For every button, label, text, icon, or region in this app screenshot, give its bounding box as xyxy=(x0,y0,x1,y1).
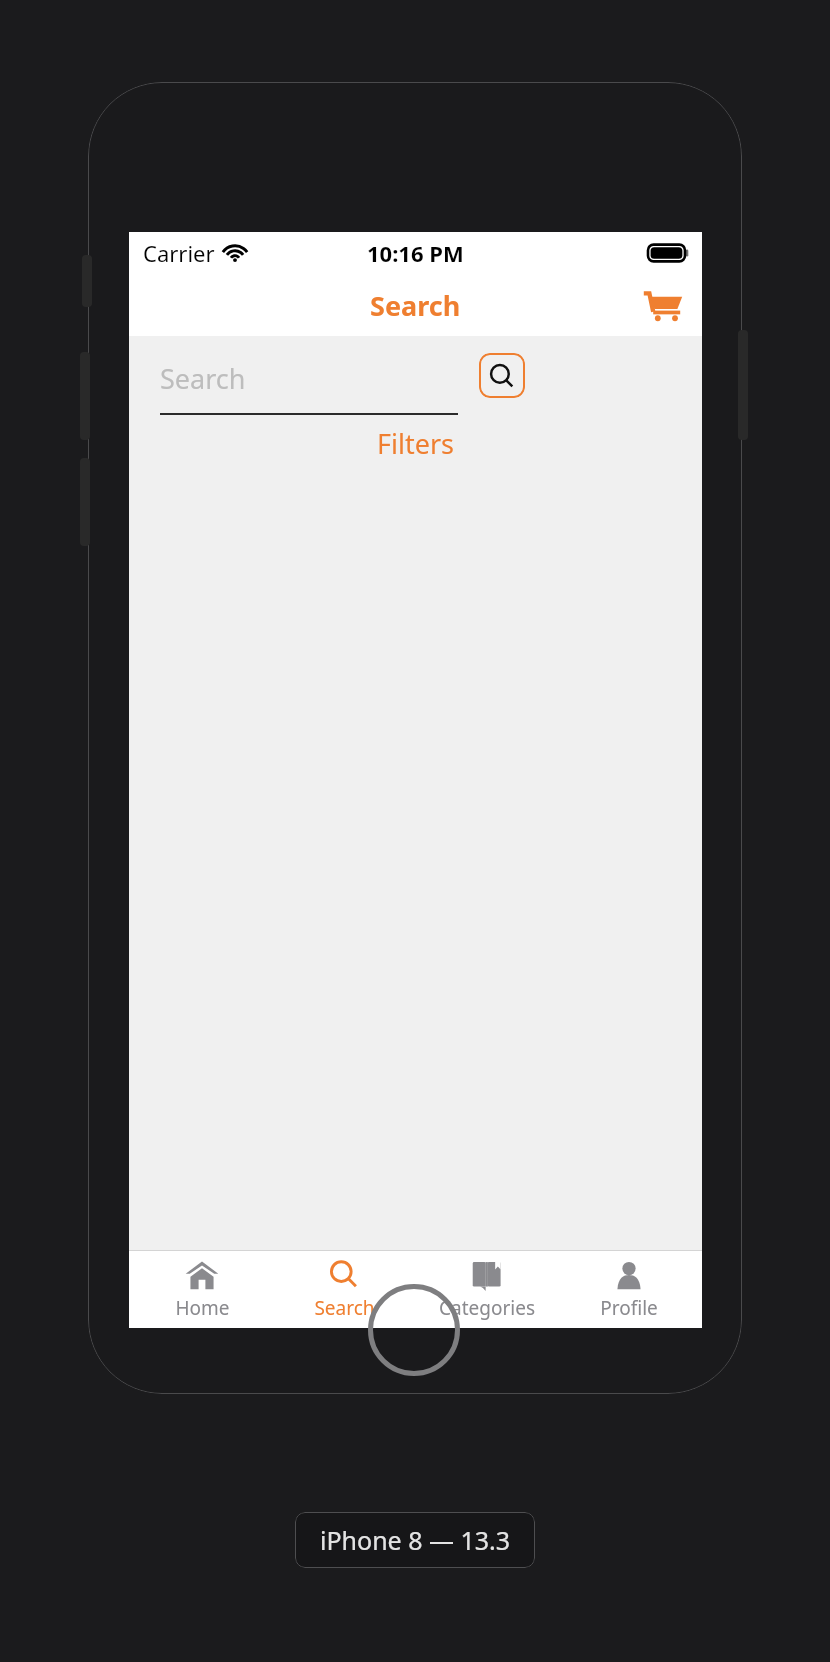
staticText: 10:16 PM xyxy=(367,238,464,268)
staticText: Home xyxy=(175,1295,230,1321)
other: Home button xyxy=(368,1284,460,1376)
button[interactable]: Home xyxy=(132,1251,272,1328)
staticText: Search xyxy=(314,1295,375,1321)
staticText: iPhone 8 — 13.3 xyxy=(320,1523,511,1557)
staticText: Carrier xyxy=(143,238,215,268)
staticText: Search xyxy=(160,360,246,397)
staticText: Categories xyxy=(439,1295,535,1321)
button[interactable]: Search xyxy=(274,1251,414,1328)
button[interactable]: Categories xyxy=(417,1251,557,1328)
button[interactable]: Profile xyxy=(559,1251,699,1328)
button[interactable]: Filters xyxy=(367,422,465,465)
button[interactable]: Cart xyxy=(638,280,688,330)
staticText: Profile xyxy=(600,1295,658,1321)
button[interactable]: Search xyxy=(479,353,525,398)
button[interactable]: Search xyxy=(160,360,458,415)
staticText: Search xyxy=(370,287,461,324)
